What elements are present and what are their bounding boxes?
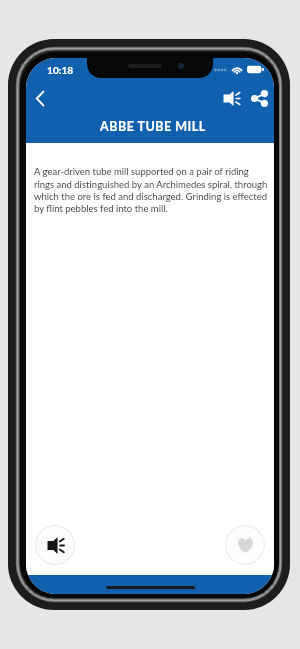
staticText: A gear-driven tube mill supported on a p… [34,166,268,214]
staticText: ABBE TUBE MILL [100,119,206,134]
button[interactable]: Pronounce [217,87,245,109]
staticText: 10:18 [47,64,74,76]
button[interactable]: Share [245,87,273,109]
button[interactable]: Favorite [225,525,265,565]
button[interactable]: Pronounce [35,525,75,565]
button[interactable]: Back [26,87,54,109]
